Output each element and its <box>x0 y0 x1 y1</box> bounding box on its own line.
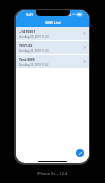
staticText: TEST-02 <box>19 43 33 48</box>
staticText: Sun Aug 25, 2019 11:23 <box>19 49 49 53</box>
button[interactable]: TEST-02 <box>16 41 89 54</box>
staticText: iPhone Xs – 12.4 <box>37 171 68 176</box>
staticText: +1415551 <box>19 29 36 34</box>
staticText: 9:41 <box>26 12 34 17</box>
staticText: Sun Aug 25, 2019 11:23 <box>19 35 49 39</box>
staticText: SMS List <box>45 20 61 25</box>
button[interactable]: Test SMS <box>16 55 89 68</box>
button[interactable]: Compose message <box>76 149 84 157</box>
staticText: Test SMS <box>19 57 35 62</box>
button[interactable]: +1415551 <box>16 27 89 40</box>
staticText: Sun Aug 25, 2019 11:02 <box>19 63 49 67</box>
